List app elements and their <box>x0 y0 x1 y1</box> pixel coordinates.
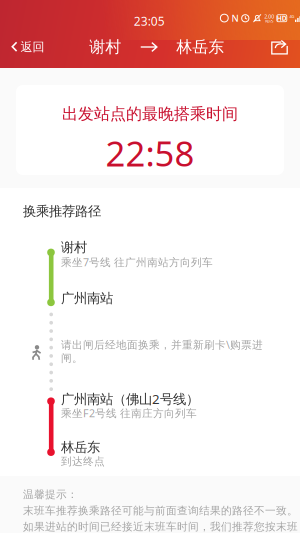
staticText: 如果进站的时间已经接近末班车时间，我们推荐您按末班 <box>23 520 298 533</box>
staticText: 乘坐F2号线 往南庄方向列车 <box>61 406 197 420</box>
staticText: HD <box>277 14 287 23</box>
staticText: 23:05 <box>134 13 165 29</box>
staticText: 谢村 <box>89 37 121 57</box>
staticText: 返回 <box>20 40 44 54</box>
staticText: 谢村 <box>61 239 87 255</box>
staticText: 请出闸后经地面换乘，并重新刷卡\购票进闸。 <box>61 337 263 365</box>
staticText: 林岳东 <box>176 37 224 57</box>
staticText: 4G <box>289 14 294 19</box>
staticText: KB/S <box>265 18 273 24</box>
staticText: 温馨提示： <box>23 488 78 501</box>
staticText: 22:58 <box>105 130 194 176</box>
staticText: 出发站点的最晚搭乘时间 <box>62 104 238 124</box>
staticText: 林岳东 <box>61 439 100 455</box>
staticText: 广州南站 <box>61 290 113 306</box>
staticText: 末班车推荐换乘路径可能与前面查询结果的路径不一致。 <box>23 504 298 517</box>
button[interactable]: 分享 <box>259 26 300 68</box>
staticText: 到达终点 <box>61 455 105 468</box>
staticText: 乘坐7号线 往广州南站方向列车 <box>61 255 213 269</box>
staticText: N <box>231 12 238 24</box>
staticText: 广州南站（佛山2号线） <box>61 390 199 408</box>
staticText: 2.00 <box>264 13 274 20</box>
staticText: 换乘推荐路径 <box>23 203 101 219</box>
button[interactable]: 返回 <box>0 26 54 68</box>
